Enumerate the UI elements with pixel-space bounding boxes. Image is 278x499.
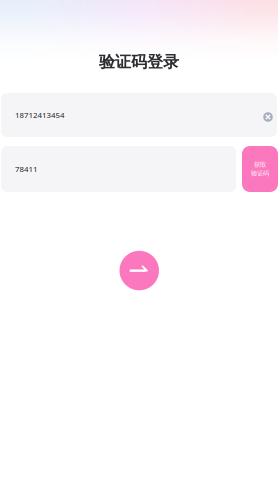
staticText: 验证码 [251, 169, 269, 177]
staticText: 18712413454 [15, 110, 65, 120]
staticText: 78411 [15, 164, 38, 174]
staticText: 验证码登录 [99, 52, 179, 72]
button[interactable]: 提交 [119, 251, 159, 290]
button[interactable]: 获取 [242, 146, 278, 192]
staticText: 获取 [254, 161, 266, 168]
button[interactable]: 清除 [258, 106, 276, 124]
